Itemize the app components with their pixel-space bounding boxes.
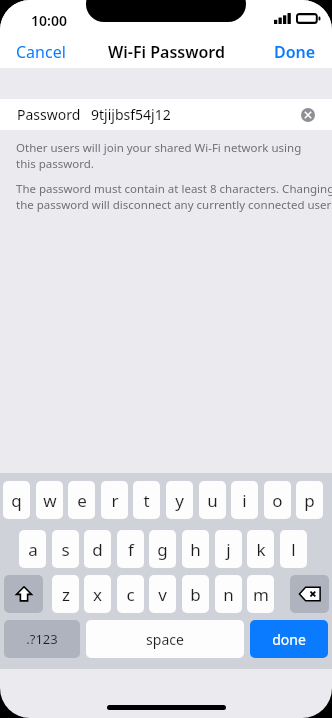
button[interactable]: space [86,620,244,658]
staticText: x [93,583,102,606]
button[interactable]: Password [0,99,332,130]
staticText: 10:00 [31,11,67,30]
staticText: l [291,538,296,561]
staticText: y [175,489,184,512]
button[interactable]: a [19,530,46,568]
button[interactable]: l [280,530,307,568]
button[interactable]: Backspace [290,575,329,613]
button[interactable]: b [182,575,209,613]
staticText: .?123 [26,630,58,648]
button[interactable]: done [250,620,328,658]
button[interactable]: n [215,575,242,613]
button[interactable]: y [166,481,193,519]
staticText: p [304,489,315,512]
button[interactable]: h [182,530,209,568]
staticText: n [223,583,234,606]
button[interactable]: t [133,481,160,519]
staticText: done [272,630,306,649]
staticText: e [77,489,87,512]
button[interactable]: c [117,575,144,613]
button[interactable]: g [149,530,176,568]
button[interactable]: s [52,530,79,568]
button[interactable]: p [296,481,323,519]
staticText: space [146,630,184,649]
button[interactable]: z [52,575,79,613]
staticText: t [143,489,150,512]
button[interactable]: r [101,481,128,519]
staticText: Password [17,105,81,124]
staticText: o [272,489,283,512]
staticText: s [61,538,70,561]
button[interactable]: Done [266,37,324,67]
button[interactable]: Shift [4,575,43,613]
staticText: d [92,538,103,561]
staticText: v [158,583,167,606]
button[interactable]: Cancel [8,37,74,67]
button[interactable]: v [149,575,176,613]
button[interactable]: k [247,530,274,568]
staticText: Wi-Fi Password [108,41,225,63]
staticText: w [43,489,57,512]
button[interactable]: .?123 [4,620,80,658]
staticText: 9tjijbsf54j12 [91,105,171,124]
button[interactable]: d [84,530,111,568]
button[interactable]: q [3,481,30,519]
staticText: g [157,538,168,561]
button[interactable]: w [36,481,63,519]
staticText: a [28,538,38,561]
button[interactable]: f [117,530,144,568]
button[interactable]: m [247,575,274,613]
staticText: The password must contain at least 8 cha… [16,181,332,212]
staticText: z [62,583,70,606]
button[interactable]: o [264,481,291,519]
button[interactable]: i [231,481,258,519]
staticText: Done [274,41,316,63]
staticText: u [207,489,218,512]
staticText: j [226,538,231,561]
staticText: h [190,538,201,561]
button[interactable]: j [215,530,242,568]
staticText: m [253,583,269,606]
staticText: b [190,583,201,606]
staticText: r [111,489,119,512]
button[interactable]: Clear text [297,104,319,126]
staticText: f [128,538,134,561]
staticText: i [242,489,247,512]
staticText: q [11,489,22,512]
staticText: Cancel [16,41,66,63]
staticText: c [126,583,135,606]
staticText: k [256,538,266,561]
staticText: Other users will join your shared Wi-Fi … [16,140,302,171]
button[interactable]: x [84,575,111,613]
button[interactable]: e [68,481,95,519]
button[interactable]: u [199,481,226,519]
